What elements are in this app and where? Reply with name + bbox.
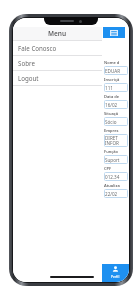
staticText: Perfil	[111, 274, 120, 279]
staticText: Menu	[48, 29, 67, 38]
button[interactable]: Sobre	[13, 56, 102, 71]
staticText: CPF	[104, 166, 112, 171]
button[interactable]: Logout	[13, 71, 102, 86]
staticText: 22/02	[105, 191, 118, 197]
staticText: Fale Conosco	[18, 44, 57, 52]
button[interactable]: Fale Conosco	[13, 41, 102, 56]
staticText: Data de	[104, 94, 120, 99]
staticText: EDUAR	[105, 68, 121, 74]
staticText: 012.34	[105, 174, 120, 180]
staticText: 111	[105, 85, 113, 91]
staticText: Empres	[104, 128, 119, 133]
staticText: Suport	[105, 157, 120, 163]
button[interactable]: Open menu	[103, 27, 125, 38]
staticText: Função	[104, 149, 119, 154]
staticText: Sócio	[105, 119, 117, 125]
staticText: Atualiza	[104, 183, 120, 188]
staticText: Logout	[18, 74, 39, 82]
staticText: Sobre	[18, 59, 35, 67]
staticText: 16/02	[105, 102, 118, 108]
staticText: Nome d	[104, 60, 120, 65]
staticText: Inscriçã	[104, 77, 120, 82]
staticText: DIRET INFOR	[105, 135, 119, 146]
button[interactable]: Profile tab	[102, 264, 129, 282]
staticText: Situaçã	[104, 111, 119, 116]
